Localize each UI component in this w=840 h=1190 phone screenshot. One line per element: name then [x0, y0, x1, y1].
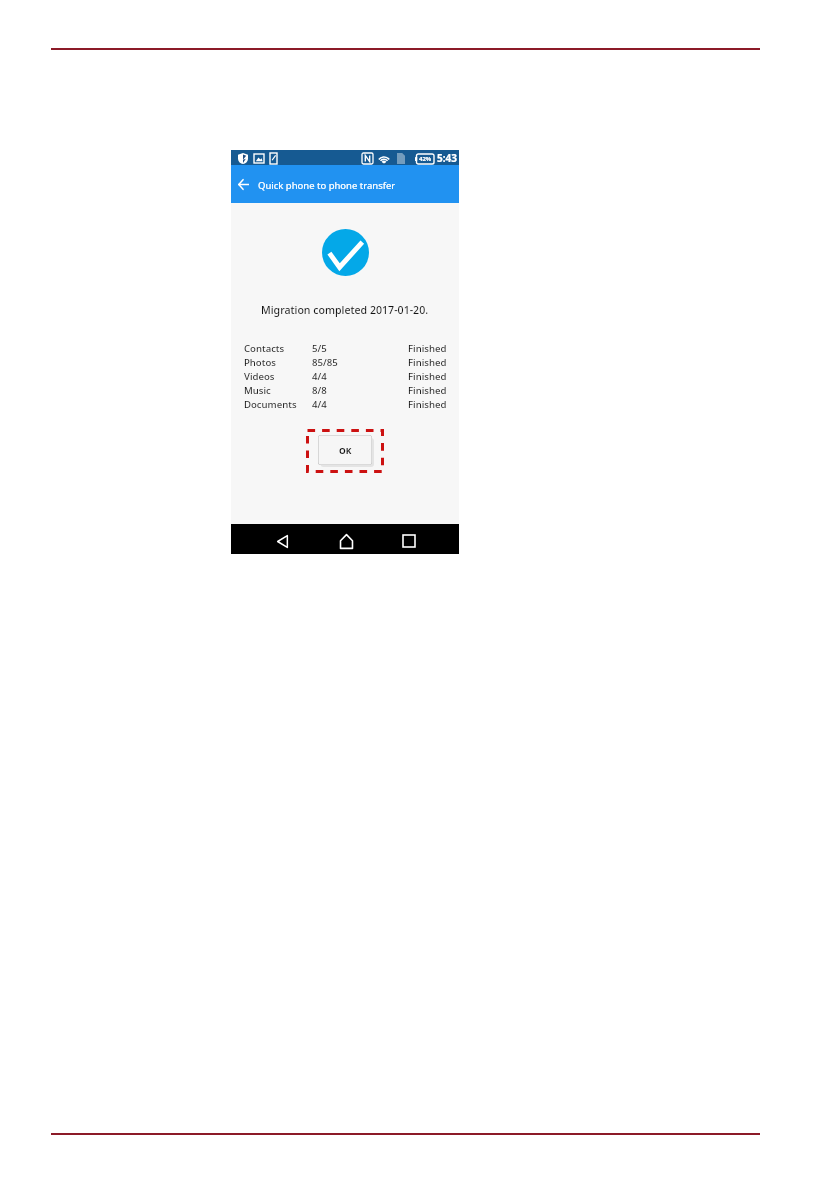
- staticText: 8/8: [312, 384, 327, 397]
- staticText: Finished: [408, 356, 447, 369]
- staticText: Finished: [408, 370, 447, 383]
- staticText: Finished: [408, 398, 447, 411]
- staticText: Quick phone to phone transfer: [258, 179, 396, 192]
- staticText: Videos: [244, 370, 275, 383]
- button[interactable]: Home: [330, 524, 362, 554]
- button[interactable]: OK: [318, 435, 372, 465]
- staticText: 42%: [419, 155, 432, 163]
- staticText: Finished: [408, 342, 447, 355]
- button[interactable]: Back: [266, 524, 298, 554]
- button[interactable]: Back: [231, 165, 255, 203]
- staticText: Contacts: [244, 342, 285, 355]
- staticText: 5/5: [312, 342, 327, 355]
- staticText: 4/4: [312, 398, 327, 411]
- staticText: Migration completed 2017-01-20.: [261, 303, 429, 317]
- staticText: Finished: [408, 384, 447, 397]
- staticText: Photos: [244, 356, 276, 369]
- staticText: OK: [339, 445, 352, 457]
- staticText: 4/4: [312, 370, 327, 383]
- staticText: 85/85: [312, 356, 338, 369]
- staticText: Documents: [244, 398, 297, 411]
- staticText: Music: [244, 384, 271, 397]
- staticText: 5:43: [437, 151, 457, 165]
- button[interactable]: Recent apps: [393, 524, 425, 554]
